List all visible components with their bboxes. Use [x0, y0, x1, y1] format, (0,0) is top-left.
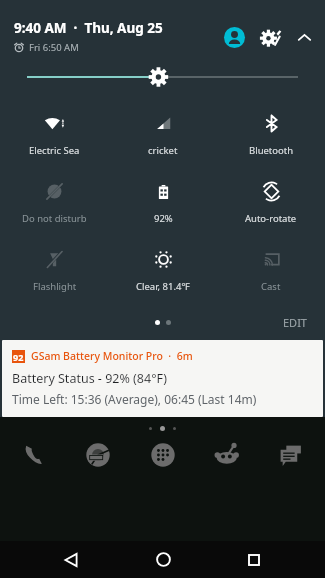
button[interactable]: Home: [143, 541, 183, 578]
button[interactable]: 92%: [109, 179, 217, 227]
button[interactable]: Electric Sea: [0, 111, 109, 159]
staticText: 9:40 AM · Thu, Aug 25: [14, 19, 163, 37]
staticText: Time Left: 15:36 (Average), 06:45 (Last …: [12, 391, 257, 407]
button[interactable]: Do not disturb: [0, 179, 109, 227]
staticText: Cast: [261, 280, 281, 293]
staticText: Do not disturb: [22, 212, 87, 225]
staticText: Electric Sea: [29, 144, 80, 157]
staticText: 92: [13, 351, 24, 363]
button[interactable]: Messaging: [271, 435, 311, 475]
button[interactable]: Phone: [14, 435, 54, 475]
button[interactable]: Cast: [217, 247, 325, 295]
button[interactable]: 92: [2, 340, 323, 417]
button[interactable]: Collapse: [289, 22, 319, 52]
button[interactable]: Apps: [143, 435, 183, 475]
button[interactable]: Clear, 81.4℉: [109, 247, 217, 295]
button[interactable]: Reddit: [207, 435, 247, 475]
staticText: cricket: [148, 144, 178, 157]
button[interactable]: Back: [51, 541, 91, 578]
button[interactable]: Settings: [251, 18, 289, 56]
staticText: Bluetooth: [249, 144, 294, 157]
staticText: Flashlight: [33, 280, 77, 293]
staticText: 92%: [154, 212, 173, 225]
staticText: Auto-rotate: [245, 212, 297, 225]
staticText: Battery Status - 92% (84°F): [12, 370, 167, 387]
button[interactable]: Auto-rotate: [217, 179, 325, 227]
button[interactable]: Bluetooth: [217, 111, 325, 159]
staticText: Clear, 81.4℉: [136, 280, 190, 293]
button[interactable]: cricket: [109, 111, 217, 159]
button[interactable]: Chrome Beta: [78, 435, 118, 475]
button[interactable]: Flashlight: [0, 247, 109, 295]
staticText: EDIT: [283, 315, 307, 330]
button[interactable]: Brightness: [0, 60, 325, 94]
button[interactable]: Recents: [234, 541, 274, 578]
button[interactable]: User account: [217, 20, 251, 54]
button[interactable]: EDIT: [279, 311, 311, 334]
staticText: GSam Battery Monitor Pro · 6m: [31, 349, 193, 363]
staticText: Fri 6:50 AM: [29, 41, 79, 54]
